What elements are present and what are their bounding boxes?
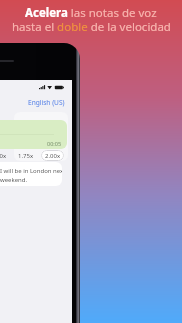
staticText: I will be in London next weekend. bbox=[0, 167, 62, 184]
staticText: 1.75x bbox=[18, 152, 34, 160]
button[interactable]: 1.50x bbox=[0, 150, 10, 161]
other: Status icons bbox=[38, 84, 68, 92]
button[interactable]: 1.75x bbox=[14, 150, 37, 161]
staticText: 1.50x bbox=[0, 152, 7, 160]
staticText: hasta el doble de la velocidad bbox=[12, 19, 171, 35]
button[interactable]: English (US) bbox=[26, 97, 67, 108]
button[interactable]: 2.00x bbox=[41, 150, 64, 161]
staticText: 2.00x bbox=[45, 152, 61, 160]
staticText: 00:05 bbox=[47, 140, 62, 147]
staticText: Acelera las notas de voz bbox=[25, 5, 157, 21]
staticText: English (US) bbox=[28, 98, 65, 107]
